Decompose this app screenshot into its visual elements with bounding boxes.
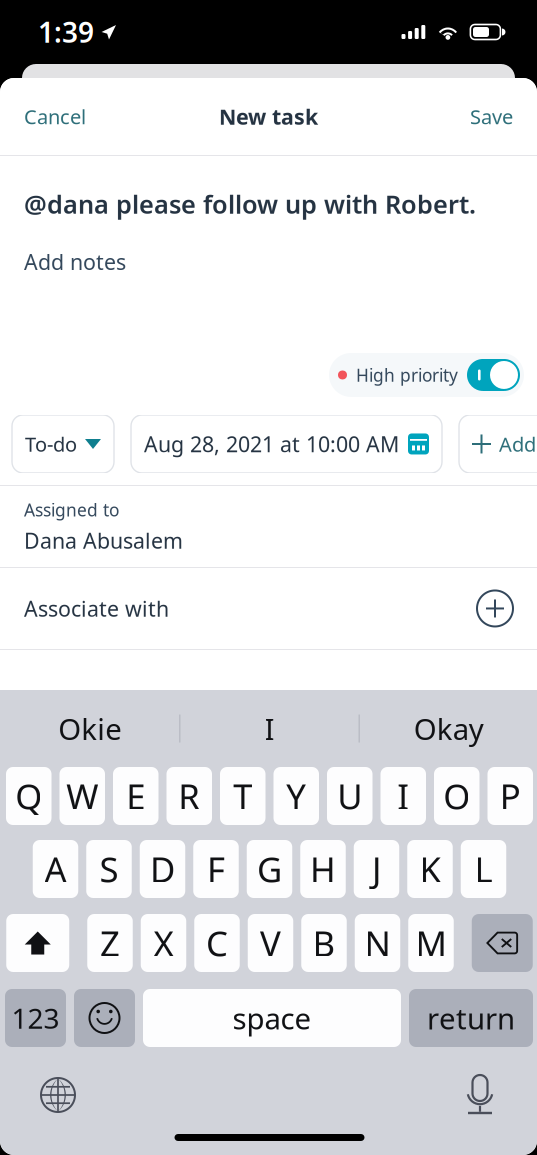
button[interactable]: Cancel	[0, 78, 110, 155]
staticText: T	[233, 773, 252, 819]
staticText: S	[99, 846, 118, 892]
button[interactable]: Add notes	[0, 221, 537, 276]
staticText: New task	[219, 102, 318, 131]
button[interactable]: K	[407, 840, 453, 898]
button[interactable]: Delete	[472, 914, 533, 972]
button[interactable]: N	[355, 914, 400, 972]
button[interactable]: X	[141, 914, 186, 972]
staticText: 123	[11, 999, 59, 1037]
staticText: High priority	[356, 363, 458, 386]
button[interactable]: Add	[459, 415, 537, 473]
button[interactable]: A	[33, 840, 78, 898]
staticText: I	[264, 709, 274, 748]
button[interactable]: H	[300, 840, 346, 898]
button[interactable]: Switch keyboard	[41, 1078, 75, 1112]
button[interactable]: D	[140, 840, 185, 898]
staticText: R	[178, 773, 200, 819]
button[interactable]: I	[180, 690, 359, 767]
staticText: Associate with	[24, 594, 169, 623]
staticText: Okay	[414, 709, 484, 748]
button[interactable]: return	[409, 989, 533, 1047]
button[interactable]: L	[461, 840, 506, 898]
staticText: Okie	[58, 709, 122, 748]
staticText: space	[232, 998, 311, 1037]
staticText: P	[500, 773, 521, 819]
staticText: J	[372, 846, 381, 892]
button[interactable]: C	[194, 914, 240, 972]
button[interactable]: E	[113, 767, 158, 825]
button[interactable]: P	[487, 767, 533, 825]
staticText: Assigned to	[24, 498, 119, 521]
staticText: @dana please follow up with Robert.	[24, 187, 476, 221]
button[interactable]: Okie	[1, 690, 179, 767]
button[interactable]: Dictate	[465, 1075, 495, 1115]
staticText: H	[310, 846, 336, 892]
staticText: Y	[286, 773, 306, 819]
staticText: Dana Abusalem	[24, 526, 183, 555]
button[interactable]: 123	[5, 989, 66, 1047]
staticText: C	[206, 920, 228, 966]
staticText: return	[427, 998, 515, 1037]
staticText: O	[443, 773, 470, 819]
button[interactable]: W	[59, 767, 105, 825]
button[interactable]: To-do	[12, 415, 114, 473]
button[interactable]: Y	[273, 767, 319, 825]
button[interactable]: Okay	[360, 690, 537, 767]
staticText: N	[364, 920, 390, 966]
button[interactable]: M	[408, 914, 454, 972]
staticText: 1:39	[38, 13, 94, 51]
button[interactable]: space	[143, 989, 401, 1047]
staticText: U	[337, 773, 362, 819]
staticText: Add notes	[24, 248, 126, 276]
staticText: F	[207, 846, 225, 892]
staticText: G	[257, 846, 282, 892]
staticText: Q	[15, 773, 42, 819]
button[interactable]: O	[434, 767, 479, 825]
button[interactable]: T	[220, 767, 265, 825]
staticText: V	[260, 920, 281, 966]
button[interactable]: S	[86, 840, 132, 898]
staticText: M	[415, 920, 446, 966]
staticText: To-do	[25, 431, 77, 457]
staticText: B	[312, 920, 335, 966]
staticText: D	[150, 846, 175, 892]
staticText: Add	[499, 431, 536, 457]
button[interactable]: V	[248, 914, 293, 972]
button[interactable]: F	[193, 840, 239, 898]
staticText: Save	[470, 103, 513, 130]
staticText: I	[397, 773, 409, 819]
button[interactable]: Q	[6, 767, 51, 825]
button[interactable]: Associate with	[0, 568, 537, 649]
staticText: W	[66, 773, 98, 819]
button[interactable]: Assigned to	[0, 486, 537, 567]
staticText: E	[126, 773, 145, 819]
button[interactable]: G	[247, 840, 292, 898]
button[interactable]: High priority	[329, 353, 524, 397]
staticText: Cancel	[24, 103, 86, 130]
button[interactable]: Z	[87, 914, 133, 972]
staticText: K	[419, 846, 440, 892]
button[interactable]: U	[327, 767, 372, 825]
button[interactable]: R	[166, 767, 212, 825]
staticText: X	[153, 920, 173, 966]
button[interactable]: Save	[446, 78, 537, 155]
button[interactable]: Shift	[6, 914, 69, 972]
staticText: Z	[100, 920, 120, 966]
staticText: A	[44, 846, 66, 892]
button[interactable]: Emoji	[74, 989, 135, 1047]
button[interactable]: B	[301, 914, 347, 972]
button[interactable]: I	[380, 767, 426, 825]
staticText: L	[474, 846, 492, 892]
button[interactable]: J	[354, 840, 399, 898]
staticText: Aug 28, 2021 at 10:00 AM	[144, 430, 399, 458]
button[interactable]: Aug 28, 2021 at 10:00 AM	[131, 415, 442, 473]
